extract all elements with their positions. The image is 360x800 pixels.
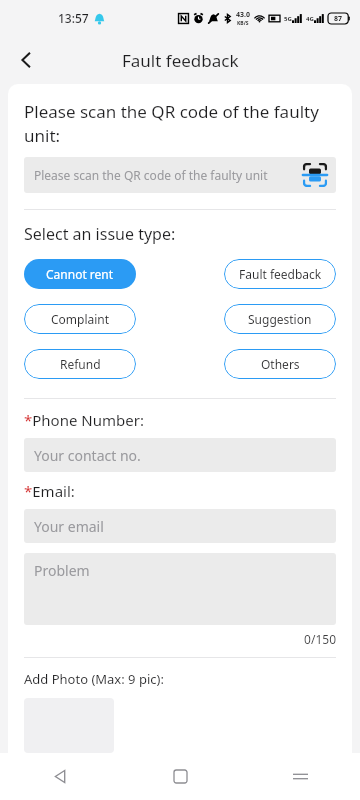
staticText: Problem [34,561,90,580]
staticText: Your email [34,517,104,536]
button[interactable]: Your contact no. [24,438,336,472]
button[interactable]: Complaint [24,304,136,334]
staticText: Cannot rent [46,266,114,282]
staticText: 43.0 [236,10,250,20]
button[interactable]: Please scan the QR code of the faulty un… [24,157,336,193]
button[interactable]: Back [6,40,46,80]
staticText: 4G [306,15,314,23]
staticText: Please scan the QR code of the faulty un… [34,167,300,183]
staticText: Please scan the QR code of the faulty un… [24,100,319,147]
staticText: Add Photo (Max: 9 pic): [24,670,164,688]
staticText: KB/S [237,20,249,27]
button[interactable]: Recent apps [240,753,360,800]
button[interactable]: Back [0,753,120,800]
button[interactable]: Others [224,349,336,379]
staticText: Suggestion [248,311,312,327]
staticText: Fault feedback [122,49,239,72]
staticText: Others [261,356,300,372]
button[interactable]: Refund [24,349,136,379]
staticText: Complaint [51,311,110,327]
staticText: 87 [334,14,343,24]
button[interactable]: Suggestion [224,304,336,334]
button[interactable]: Home [120,753,240,800]
staticText: Refund [60,356,101,372]
button[interactable]: Fault feedback [224,259,336,289]
staticText: Your contact no. [34,446,141,465]
staticText: Fault feedback [239,266,322,282]
button[interactable]: Scan QR code [300,160,330,190]
staticText: *Phone Number: [24,410,144,430]
staticText: 5G [284,15,292,23]
button[interactable]: Cannot rent [24,259,136,289]
staticText: *Email: [24,481,75,501]
button[interactable]: Your email [24,509,336,543]
staticText: 0/150 [24,631,336,647]
staticText: 13:57 [58,10,89,26]
staticText: Select an issue type: [24,223,176,245]
button[interactable]: Problem [24,553,336,625]
